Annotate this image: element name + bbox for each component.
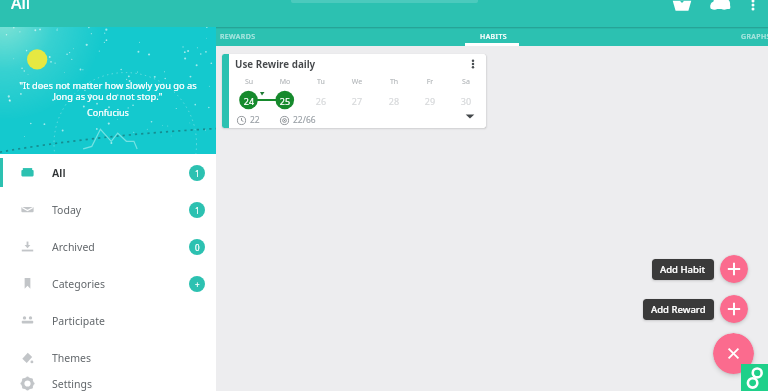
staticText: 28 — [385, 95, 403, 107]
staticText: 30 — [457, 95, 475, 107]
staticText: 1 — [195, 205, 200, 216]
button[interactable]: Add Reward — [643, 299, 714, 320]
button[interactable]: Use Rewire daily — [222, 54, 486, 128]
button[interactable]: Today — [0, 191, 216, 228]
staticText: Mo — [279, 77, 291, 87]
staticText: 25 — [276, 95, 294, 107]
button[interactable]: Participate — [0, 302, 216, 339]
staticText: Themes — [52, 351, 92, 365]
staticText: Tu — [315, 77, 327, 87]
staticText: Archived — [52, 240, 95, 254]
staticText: HABITS — [480, 32, 508, 42]
staticText: 27 — [348, 95, 366, 107]
button[interactable]: More options — [742, 0, 764, 16]
button[interactable]: Add Reward — [720, 295, 748, 323]
staticText: 26 — [312, 95, 330, 107]
staticText: Add Reward — [651, 303, 706, 316]
staticText: Categories — [52, 277, 106, 291]
staticText: Sa — [460, 77, 472, 87]
button[interactable]: All — [0, 154, 216, 191]
staticText: 22 — [250, 114, 260, 126]
staticText: Th — [388, 77, 400, 87]
button[interactable]: Expand — [461, 107, 479, 125]
button[interactable]: Close — [713, 333, 754, 374]
button[interactable]: Habit menu — [464, 55, 482, 73]
staticText: Participate — [52, 314, 105, 328]
staticText: "It does not matter how slowly you go as… — [8, 79, 208, 102]
staticText: Add Habit — [660, 263, 706, 276]
button[interactable]: Archived — [0, 228, 216, 265]
button[interactable]: Themes — [0, 339, 216, 376]
staticText: All — [52, 166, 66, 180]
staticText: Use Rewire daily — [235, 58, 316, 71]
staticText: 1 — [195, 168, 200, 179]
staticText: REWARDS — [220, 32, 256, 42]
staticText: Fr — [424, 77, 436, 87]
staticText: + — [195, 279, 200, 290]
button[interactable]: Add Habit — [652, 259, 714, 280]
button[interactable]: Categories — [0, 265, 216, 302]
staticText: GRAPHS — [741, 32, 768, 42]
staticText: Confucius — [8, 106, 208, 118]
button[interactable]: Add Habit — [720, 255, 748, 283]
button[interactable]: Sync — [705, 0, 737, 22]
staticText: All — [11, 0, 31, 14]
staticText: 24 — [240, 95, 258, 107]
staticText: 22/66 — [293, 114, 316, 126]
staticText: Su — [243, 77, 255, 87]
staticText: We — [351, 77, 363, 87]
staticText: Today — [52, 203, 82, 217]
staticText: Settings — [52, 377, 92, 391]
staticText: 29 — [421, 95, 439, 107]
button[interactable]: Settings — [0, 376, 216, 391]
button[interactable]: Rewards — [666, 0, 698, 21]
staticText: 0 — [195, 242, 200, 253]
